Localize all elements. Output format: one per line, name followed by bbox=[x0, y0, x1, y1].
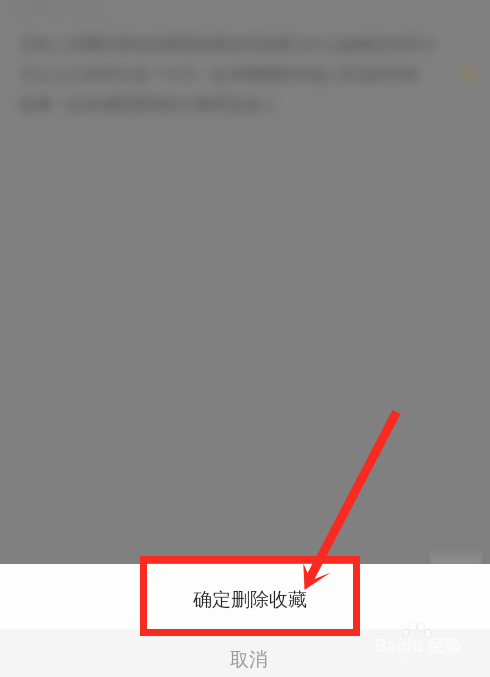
button[interactable]: 确定删除收藏 bbox=[0, 564, 490, 629]
button[interactable]: Dismiss bbox=[0, 0, 490, 564]
staticText: 取消 bbox=[230, 648, 268, 672]
staticText: 确定删除收藏 bbox=[193, 588, 307, 612]
button[interactable]: 取消 bbox=[0, 629, 490, 677]
staticText: 历史上有哪些著名的爱情故事这些故事为什么能够流传至今 天让人们津津乐道？今天一起… bbox=[20, 35, 436, 115]
